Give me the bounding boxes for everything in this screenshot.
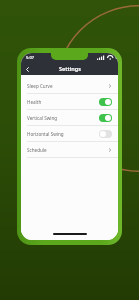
staticText: Sleep Curve bbox=[27, 83, 108, 89]
button[interactable]: Vertical Swing bbox=[21, 110, 118, 125]
staticText: Horizontal Swing bbox=[27, 131, 99, 137]
button[interactable]: Health bbox=[21, 94, 118, 109]
button[interactable]: Back bbox=[21, 63, 33, 75]
staticText: Settings bbox=[59, 65, 81, 72]
staticText: 5:07 bbox=[26, 55, 34, 60]
button[interactable]: Sleep Curve bbox=[21, 78, 118, 93]
staticText: Schedule bbox=[27, 147, 108, 153]
staticText: Vertical Swing bbox=[27, 115, 99, 121]
button[interactable]: Schedule bbox=[21, 142, 118, 157]
staticText: Health bbox=[27, 99, 99, 105]
button[interactable]: Horizontal Swing bbox=[21, 126, 118, 141]
